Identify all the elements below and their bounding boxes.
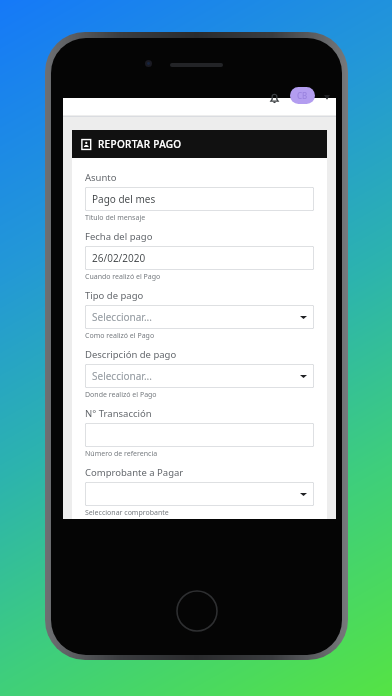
staticText: Fecha del pago	[85, 230, 153, 243]
staticText: Seleccionar...	[92, 369, 152, 383]
button[interactable]	[85, 482, 314, 506]
staticText: Pago del mes	[92, 192, 156, 206]
staticText: Donde realizó el Pago	[85, 390, 157, 400]
button[interactable]: Pago del mes	[85, 187, 314, 211]
button[interactable]: 26/02/2020	[85, 246, 314, 270]
button[interactable]: Account	[290, 87, 315, 104]
staticText: N° Transacción	[85, 407, 152, 420]
staticText: Cuando realizó el Pago	[85, 272, 161, 282]
staticText: Seleccionar comprobante	[85, 508, 169, 518]
button[interactable]: REPORTAR PAGO	[81, 130, 327, 158]
staticText: Descripción de pago	[85, 348, 177, 361]
staticText: Comprobante a Pagar	[85, 466, 184, 479]
button[interactable]: Seleccionar...	[85, 364, 314, 388]
staticText: Asunto	[85, 171, 117, 184]
staticText: Como realizó el Pago	[85, 331, 155, 341]
staticText: Seleccionar...	[92, 310, 152, 324]
button[interactable]: Home	[176, 590, 218, 632]
staticText: Titulo del mensaje	[85, 213, 146, 223]
button[interactable]	[85, 423, 314, 447]
staticText: Tipo de pago	[85, 289, 144, 302]
staticText: Número de referencia	[85, 449, 158, 459]
staticText: REPORTAR PAGO	[98, 137, 182, 151]
staticText: CB	[297, 90, 308, 101]
button[interactable]: Seleccionar...	[85, 305, 314, 329]
button[interactable]: Notifications	[268, 92, 281, 105]
staticText: 26/02/2020	[92, 251, 146, 265]
